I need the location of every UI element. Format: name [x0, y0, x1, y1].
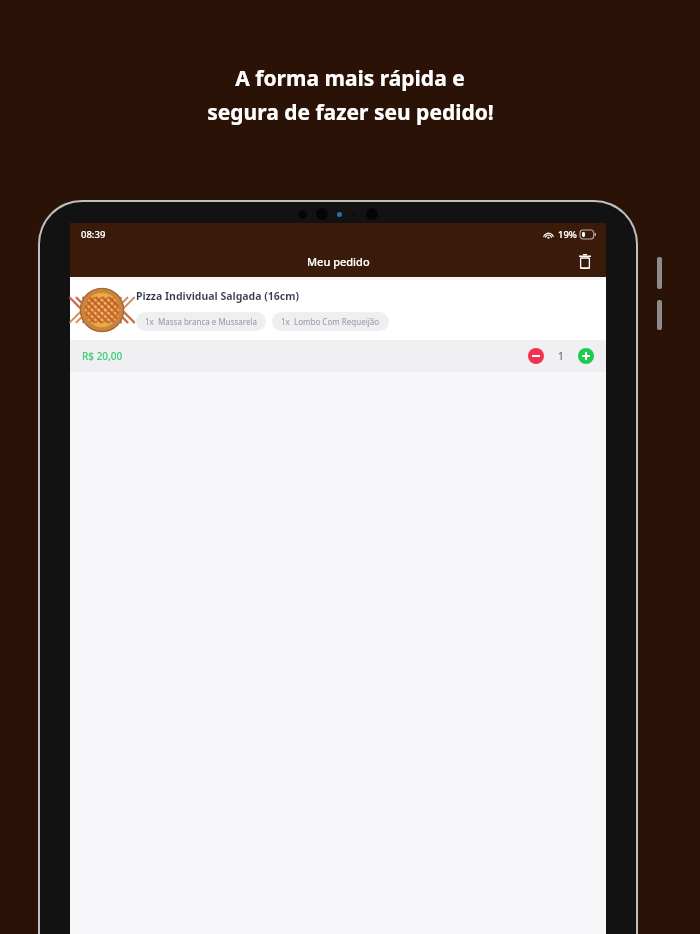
staticText: Pizza Individual Salgada (16cm)	[136, 289, 300, 303]
button[interactable]: 1x Lombo Com Requeijão	[272, 312, 389, 331]
staticText: segura de fazer seu pedido!	[207, 98, 494, 127]
staticText: 1	[558, 349, 564, 363]
button[interactable]: 1x Massa branca e Mussarela	[136, 312, 266, 331]
staticText: A forma mais rápida e	[235, 64, 465, 93]
staticText: R$ 20,00	[82, 349, 123, 363]
button[interactable]: Excluir pedido	[572, 248, 598, 274]
staticText: 19%	[558, 228, 577, 241]
staticText: 1x Lombo Com Requeijão	[281, 316, 380, 327]
button[interactable]: Pizza Individual Salgada (16cm)	[70, 280, 606, 372]
staticText: Meu pedido	[307, 254, 370, 269]
staticText: 08:39	[81, 228, 106, 241]
button[interactable]: Aumentar quantidade	[578, 348, 594, 364]
staticText: 1x Massa branca e Mussarela	[145, 316, 257, 327]
button[interactable]: Diminuir quantidade	[528, 348, 544, 364]
